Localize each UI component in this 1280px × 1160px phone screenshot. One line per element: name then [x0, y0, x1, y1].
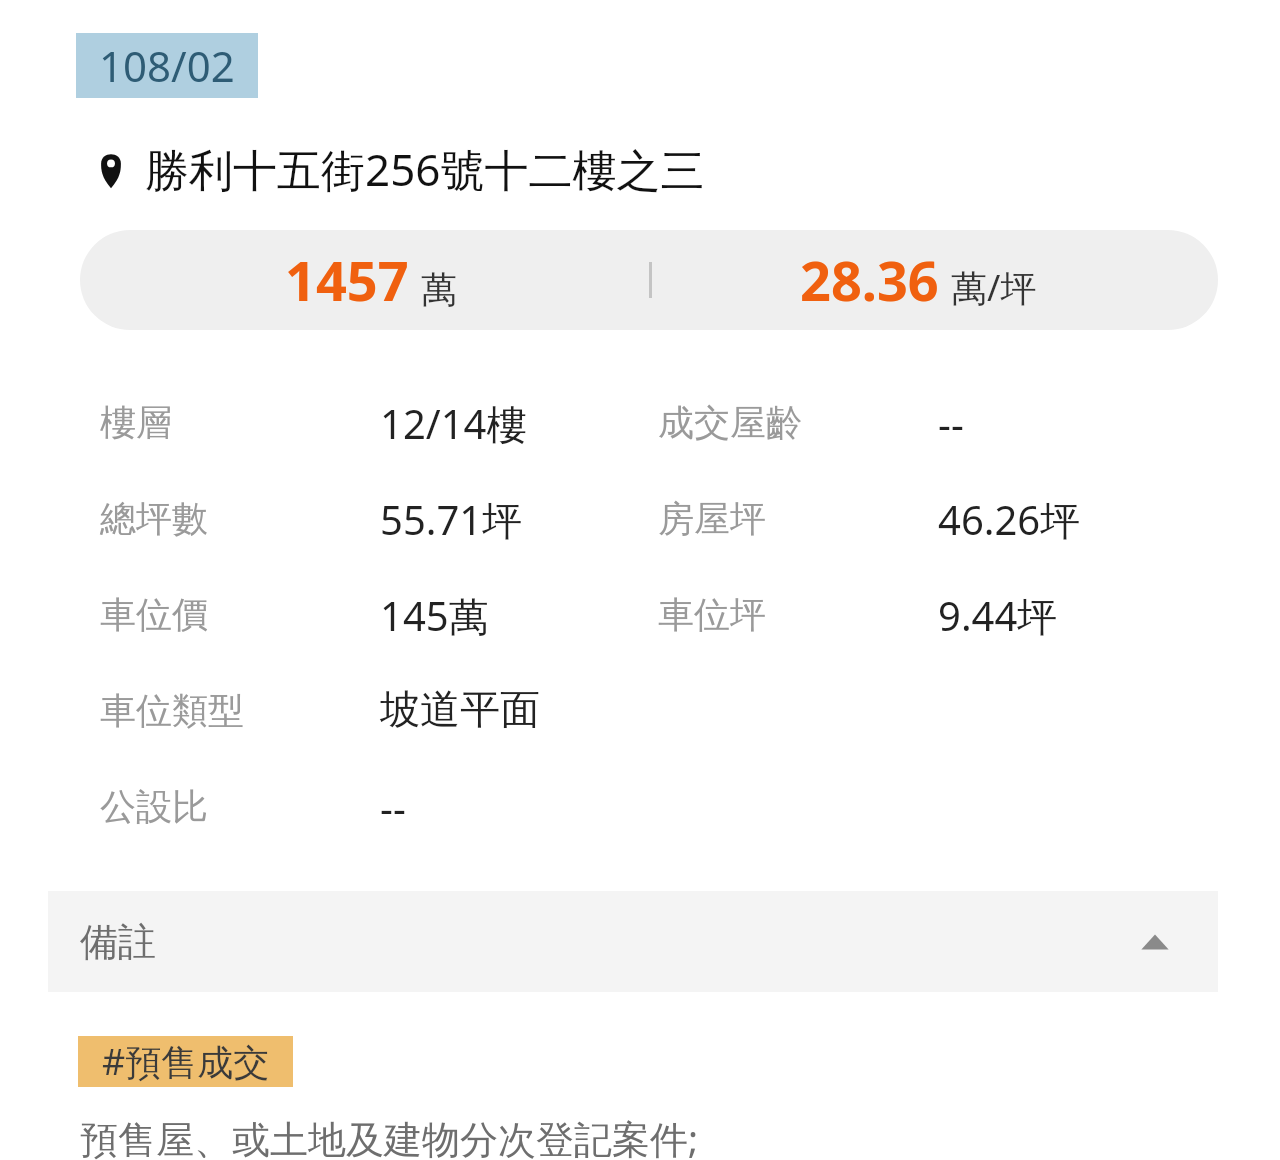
- staticText: #預售成交: [102, 1037, 270, 1086]
- button[interactable]: Location: [0, 139, 1280, 199]
- staticText: 46.26坪: [938, 492, 1081, 547]
- staticText: 車位類型: [100, 688, 244, 733]
- button[interactable]: #預售成交: [78, 1036, 293, 1087]
- staticText: 車位坪: [658, 592, 766, 637]
- staticText: 備註: [80, 918, 156, 966]
- staticText: 成交屋齡: [658, 400, 802, 445]
- staticText: 坡道平面: [380, 684, 540, 734]
- staticText: 28.36: [800, 243, 939, 317]
- staticText: 12/14樓: [380, 396, 527, 451]
- staticText: 145萬: [380, 588, 489, 643]
- staticText: 55.71坪: [380, 492, 523, 547]
- other: Collapse remarks: [1133, 920, 1177, 964]
- staticText: 9.44坪: [938, 588, 1058, 643]
- other: Location: [98, 149, 124, 189]
- staticText: 勝利十五街256號十二樓之三: [145, 139, 705, 199]
- staticText: 預售屋、或土地及建物分次登記案件;: [80, 1112, 699, 1160]
- staticText: 1457: [285, 243, 409, 317]
- staticText: 公設比: [100, 784, 208, 829]
- button[interactable]: 108/02: [76, 33, 258, 98]
- staticText: --: [380, 780, 406, 834]
- staticText: 108/02: [99, 37, 235, 94]
- staticText: 房屋坪: [658, 496, 766, 541]
- staticText: 樓層: [100, 400, 172, 445]
- button[interactable]: 備註: [48, 891, 1218, 992]
- staticText: --: [938, 396, 964, 450]
- staticText: 總坪數: [100, 496, 208, 541]
- button[interactable]: 1457: [80, 230, 1218, 330]
- staticText: 萬/坪: [951, 263, 1037, 312]
- staticText: 萬: [421, 267, 457, 312]
- staticText: 車位價: [100, 592, 208, 637]
